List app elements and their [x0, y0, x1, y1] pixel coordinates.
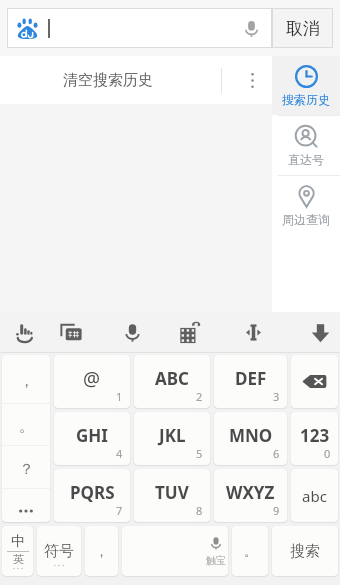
staticText: 搜索历史	[282, 92, 330, 107]
button[interactable]: More punctuation	[2, 489, 50, 522]
staticText: 0	[324, 446, 331, 461]
staticText: ？	[19, 460, 34, 479]
button[interactable]: Delete	[291, 355, 338, 408]
staticText: 周边查询	[282, 212, 330, 227]
button[interactable]: Hide keyboard	[300, 312, 340, 352]
staticText: 7	[116, 503, 123, 518]
staticText: 符号	[44, 542, 74, 561]
staticText: @	[83, 366, 101, 392]
staticText: 取消	[286, 18, 320, 39]
staticText: PQRS	[70, 481, 115, 504]
button[interactable]: 周边查询	[272, 176, 340, 235]
staticText: 清空搜索历史	[63, 71, 153, 90]
button[interactable]: JKL	[134, 412, 210, 465]
staticText: DEF	[235, 367, 267, 390]
staticText: WXYZ	[226, 481, 275, 504]
button[interactable]: Voice search	[230, 8, 272, 48]
staticText: 触宝	[206, 554, 226, 567]
staticText: 。	[244, 543, 257, 559]
staticText: 1	[116, 389, 123, 404]
staticText: 搜索	[290, 542, 320, 561]
button[interactable]: Move cursor	[206, 312, 300, 352]
button[interactable]: Space	[122, 526, 228, 576]
button[interactable]: Voice input	[92, 312, 172, 352]
staticText: 直达号	[288, 152, 324, 167]
button[interactable]: Handwriting input	[0, 312, 50, 352]
button[interactable]: GHI	[54, 412, 130, 465]
staticText: abc	[302, 486, 327, 506]
button[interactable]: Switch keyboard	[50, 312, 92, 352]
button[interactable]: Voice search	[7, 8, 272, 48]
button[interactable]: 取消	[272, 8, 333, 48]
staticText: 123	[300, 424, 330, 447]
staticText: ，	[95, 543, 108, 559]
staticText: 3	[273, 389, 280, 404]
staticText: 9	[273, 503, 280, 518]
staticText: 。	[19, 417, 34, 436]
staticText: TUV	[155, 481, 189, 504]
button[interactable]: punctuation ，	[2, 355, 50, 403]
button[interactable]: DEF	[214, 355, 287, 408]
staticText: 6	[273, 446, 280, 461]
button[interactable]: ABC	[134, 355, 210, 408]
button[interactable]: Chinese English toggle	[2, 526, 33, 576]
button[interactable]: Search	[272, 526, 338, 576]
button[interactable]: Comma	[85, 526, 118, 576]
staticText: 5	[196, 446, 203, 461]
staticText: GHI	[76, 424, 108, 447]
staticText: 2	[196, 389, 203, 404]
button[interactable]: TUV	[134, 469, 210, 522]
button[interactable]: Numeric keypad	[172, 312, 206, 352]
staticText: 英	[13, 552, 24, 566]
button[interactable]: MNO	[214, 412, 287, 465]
button[interactable]: punctuation ？	[2, 446, 50, 488]
button[interactable]: Symbols	[37, 526, 81, 576]
button[interactable]: punctuation 。	[2, 404, 50, 445]
staticText: 中	[11, 533, 25, 551]
button[interactable]: WXYZ	[214, 469, 287, 522]
staticText: ，	[19, 372, 34, 391]
button[interactable]: Period	[232, 526, 268, 576]
button[interactable]: 搜索历史	[272, 56, 340, 115]
staticText: MNO	[229, 424, 273, 447]
button[interactable]: PQRS	[54, 469, 130, 522]
staticText: ABC	[155, 367, 189, 390]
button[interactable]: More options	[232, 56, 272, 104]
button[interactable]: 123	[291, 412, 338, 465]
staticText: JKL	[159, 424, 186, 447]
staticText: 8	[196, 503, 203, 518]
staticText: 4	[116, 446, 123, 461]
button[interactable]: @	[54, 355, 130, 408]
button[interactable]: abc letters	[291, 469, 338, 522]
button[interactable]: 直达号	[272, 116, 340, 175]
button[interactable]: 清空搜索历史	[0, 56, 272, 104]
